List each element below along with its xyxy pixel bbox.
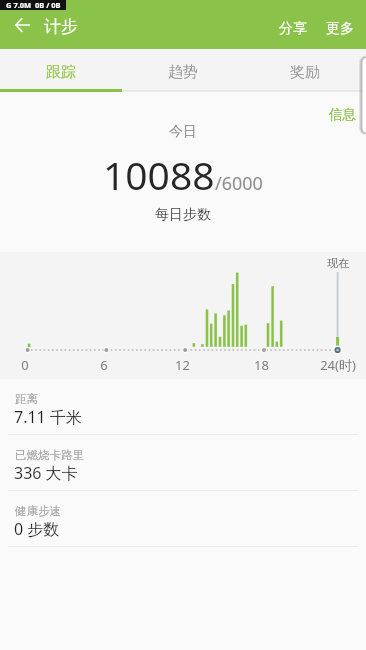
staticText: 跟踪 — [46, 63, 76, 82]
button[interactable]: 更多 — [316, 11, 366, 47]
staticText: 趋势 — [168, 63, 198, 82]
staticText: 10088 — [103, 148, 215, 201]
staticText: 0 — [21, 356, 29, 374]
staticText: 已燃烧卡路里 — [15, 448, 84, 462]
button[interactable]: 已燃烧卡路里 — [0, 435, 366, 491]
staticText: 健康步速 — [15, 504, 61, 518]
staticText: 计步 — [44, 16, 78, 37]
staticText: 今日 — [0, 123, 366, 141]
button[interactable]: 分享 — [270, 11, 316, 47]
staticText: G 7.0M 0B / 0B — [6, 0, 61, 10]
button[interactable]: 趋势 — [122, 49, 244, 92]
staticText: 分享 — [279, 20, 307, 38]
button[interactable]: Back — [7, 10, 37, 40]
staticText: 每日步数 — [0, 206, 366, 224]
staticText: 距离 — [15, 392, 38, 406]
button[interactable]: 奖励 — [244, 49, 366, 92]
staticText: 更多 — [326, 20, 354, 38]
button[interactable]: 健康步速 — [0, 491, 366, 547]
staticText: 7.11 千米 — [14, 406, 82, 428]
staticText: /6000 — [215, 171, 263, 196]
staticText: 奖励 — [290, 63, 320, 82]
staticText: 6 — [100, 356, 108, 374]
staticText: 12 — [175, 356, 190, 374]
staticText: 0 步数 — [14, 518, 60, 540]
staticText: 信息 — [329, 106, 356, 123]
button[interactable]: 距离 — [0, 379, 366, 435]
button[interactable]: 跟踪 — [0, 49, 122, 92]
staticText: 现在 — [327, 256, 349, 270]
staticText: 24(时) — [320, 356, 356, 374]
staticText: 18 — [254, 356, 269, 374]
button[interactable]: Menu — [352, 50, 366, 142]
staticText: 336 大卡 — [14, 462, 78, 484]
